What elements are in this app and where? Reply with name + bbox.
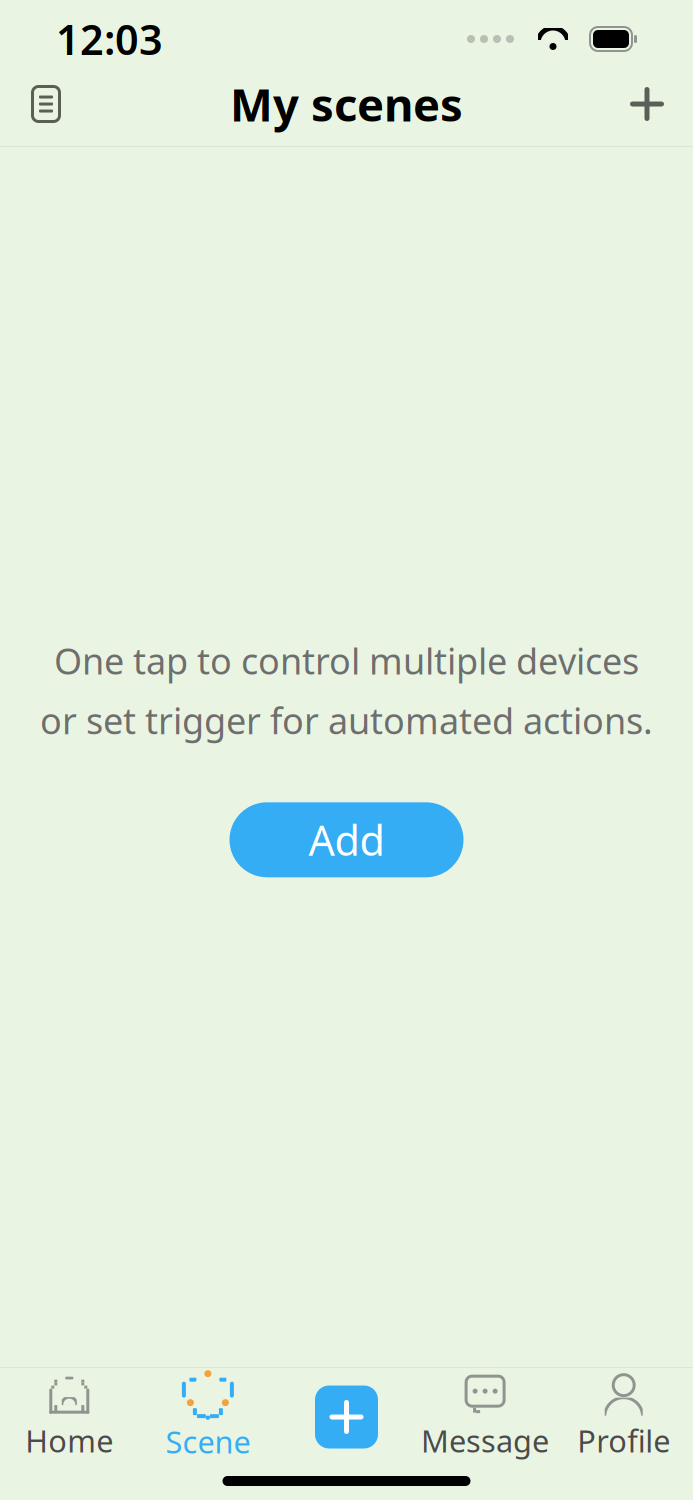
button[interactable]: Add scene [615, 72, 679, 136]
staticText: 12:03 [56, 12, 163, 66]
button[interactable]: Create [277, 1377, 416, 1456]
staticText: Message [421, 1420, 549, 1461]
button[interactable]: Message [416, 1365, 554, 1469]
staticText: Add [308, 812, 384, 867]
staticText: My scenes [230, 74, 463, 134]
staticText: Scene [165, 1421, 250, 1462]
staticText: One tap to control multiple devices [54, 637, 639, 684]
button[interactable]: Profile [554, 1365, 693, 1469]
staticText: Profile [577, 1420, 670, 1461]
button[interactable]: Scene log [14, 72, 78, 136]
button[interactable]: Add [229, 802, 463, 877]
staticText: or set trigger for automated actions. [40, 696, 653, 744]
staticText: Home [25, 1420, 113, 1461]
button[interactable]: Scene [139, 1364, 277, 1470]
button[interactable]: Home [0, 1365, 139, 1469]
